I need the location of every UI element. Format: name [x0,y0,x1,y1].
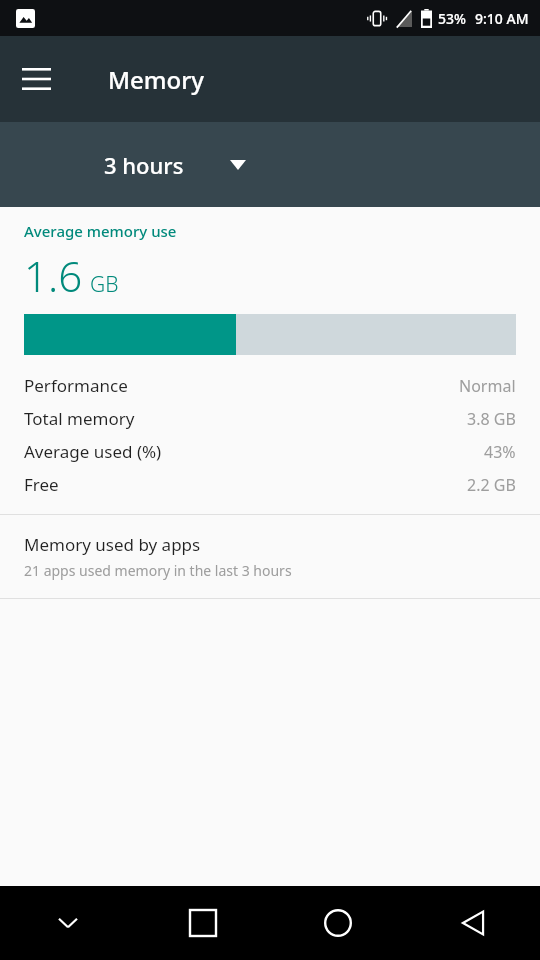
button[interactable]: Home [270,886,405,960]
staticText: 2.2 GB [467,474,516,496]
staticText: Average used (%) [24,440,162,463]
staticText: Normal [459,375,516,397]
button[interactable]: Back [405,886,540,960]
staticText: 3.8 GB [467,408,516,430]
staticText: Total memory [24,407,135,430]
button[interactable]: Total memory [0,402,540,435]
staticText: GB [90,270,119,299]
button[interactable]: Memory used by apps [0,515,540,598]
staticText: 1.6 [24,247,83,304]
staticText: Performance [24,374,128,397]
button[interactable]: 3 hours [92,142,258,188]
staticText: Free [24,473,59,496]
staticText: 43% [484,441,516,463]
staticText: 9:10 AM [475,9,529,28]
button[interactable]: Free [0,468,540,501]
button[interactable]: Average used (%) [0,435,540,468]
button[interactable]: Performance [0,369,540,402]
staticText: Memory [108,63,205,96]
button[interactable]: Hide keyboard [0,886,135,960]
staticText: Memory used by apps [24,533,201,556]
staticText: 3 hours [104,150,184,180]
button[interactable]: Open navigation drawer [12,55,60,103]
button[interactable]: Recent apps [135,886,270,960]
staticText: 21 apps used memory in the last 3 hours [24,561,292,580]
staticText: 53% [438,9,466,28]
staticText: Average memory use [24,221,177,241]
